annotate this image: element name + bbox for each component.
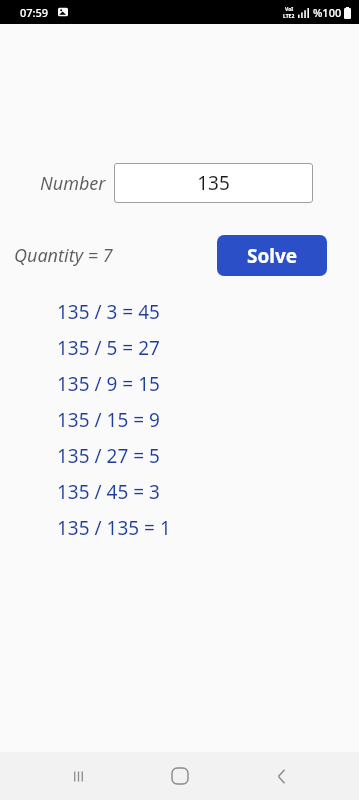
staticText: 135 / 5 = 27 xyxy=(57,335,160,361)
staticText: 135 / 15 = 9 xyxy=(57,407,160,433)
staticText: 135 / 45 = 3 xyxy=(57,479,160,505)
button[interactable]: Recents xyxy=(54,752,102,800)
staticText: Solve xyxy=(247,243,298,269)
button[interactable]: Solve xyxy=(217,235,327,276)
staticText: Number xyxy=(40,171,106,196)
staticText: VoI xyxy=(285,6,294,13)
staticText: 07:59 xyxy=(20,5,49,20)
staticText: Quantity = 7 xyxy=(14,243,113,268)
button[interactable]: 135 / 5 = 27 xyxy=(0,330,359,366)
staticText: LTE2 xyxy=(283,13,295,20)
staticText: 135 / 3 = 45 xyxy=(57,299,160,325)
button[interactable]: 135 / 15 = 9 xyxy=(0,402,359,438)
button[interactable]: 135 / 135 = 1 xyxy=(0,510,359,546)
button[interactable]: Home xyxy=(156,752,204,800)
button[interactable]: Back xyxy=(257,752,305,800)
staticText: 135 / 9 = 15 xyxy=(57,371,160,397)
staticText: 135 / 27 = 5 xyxy=(57,443,160,469)
button[interactable]: 135 / 9 = 15 xyxy=(0,366,359,402)
button[interactable]: 135 / 27 = 5 xyxy=(0,438,359,474)
staticText: 135 / 135 = 1 xyxy=(57,515,171,541)
button[interactable]: 135 / 3 = 45 xyxy=(0,294,359,330)
staticText: 135 xyxy=(197,170,230,196)
button[interactable]: 135 / 45 = 3 xyxy=(0,474,359,510)
button[interactable]: 135 xyxy=(114,163,313,203)
staticText: %100 xyxy=(313,5,342,20)
